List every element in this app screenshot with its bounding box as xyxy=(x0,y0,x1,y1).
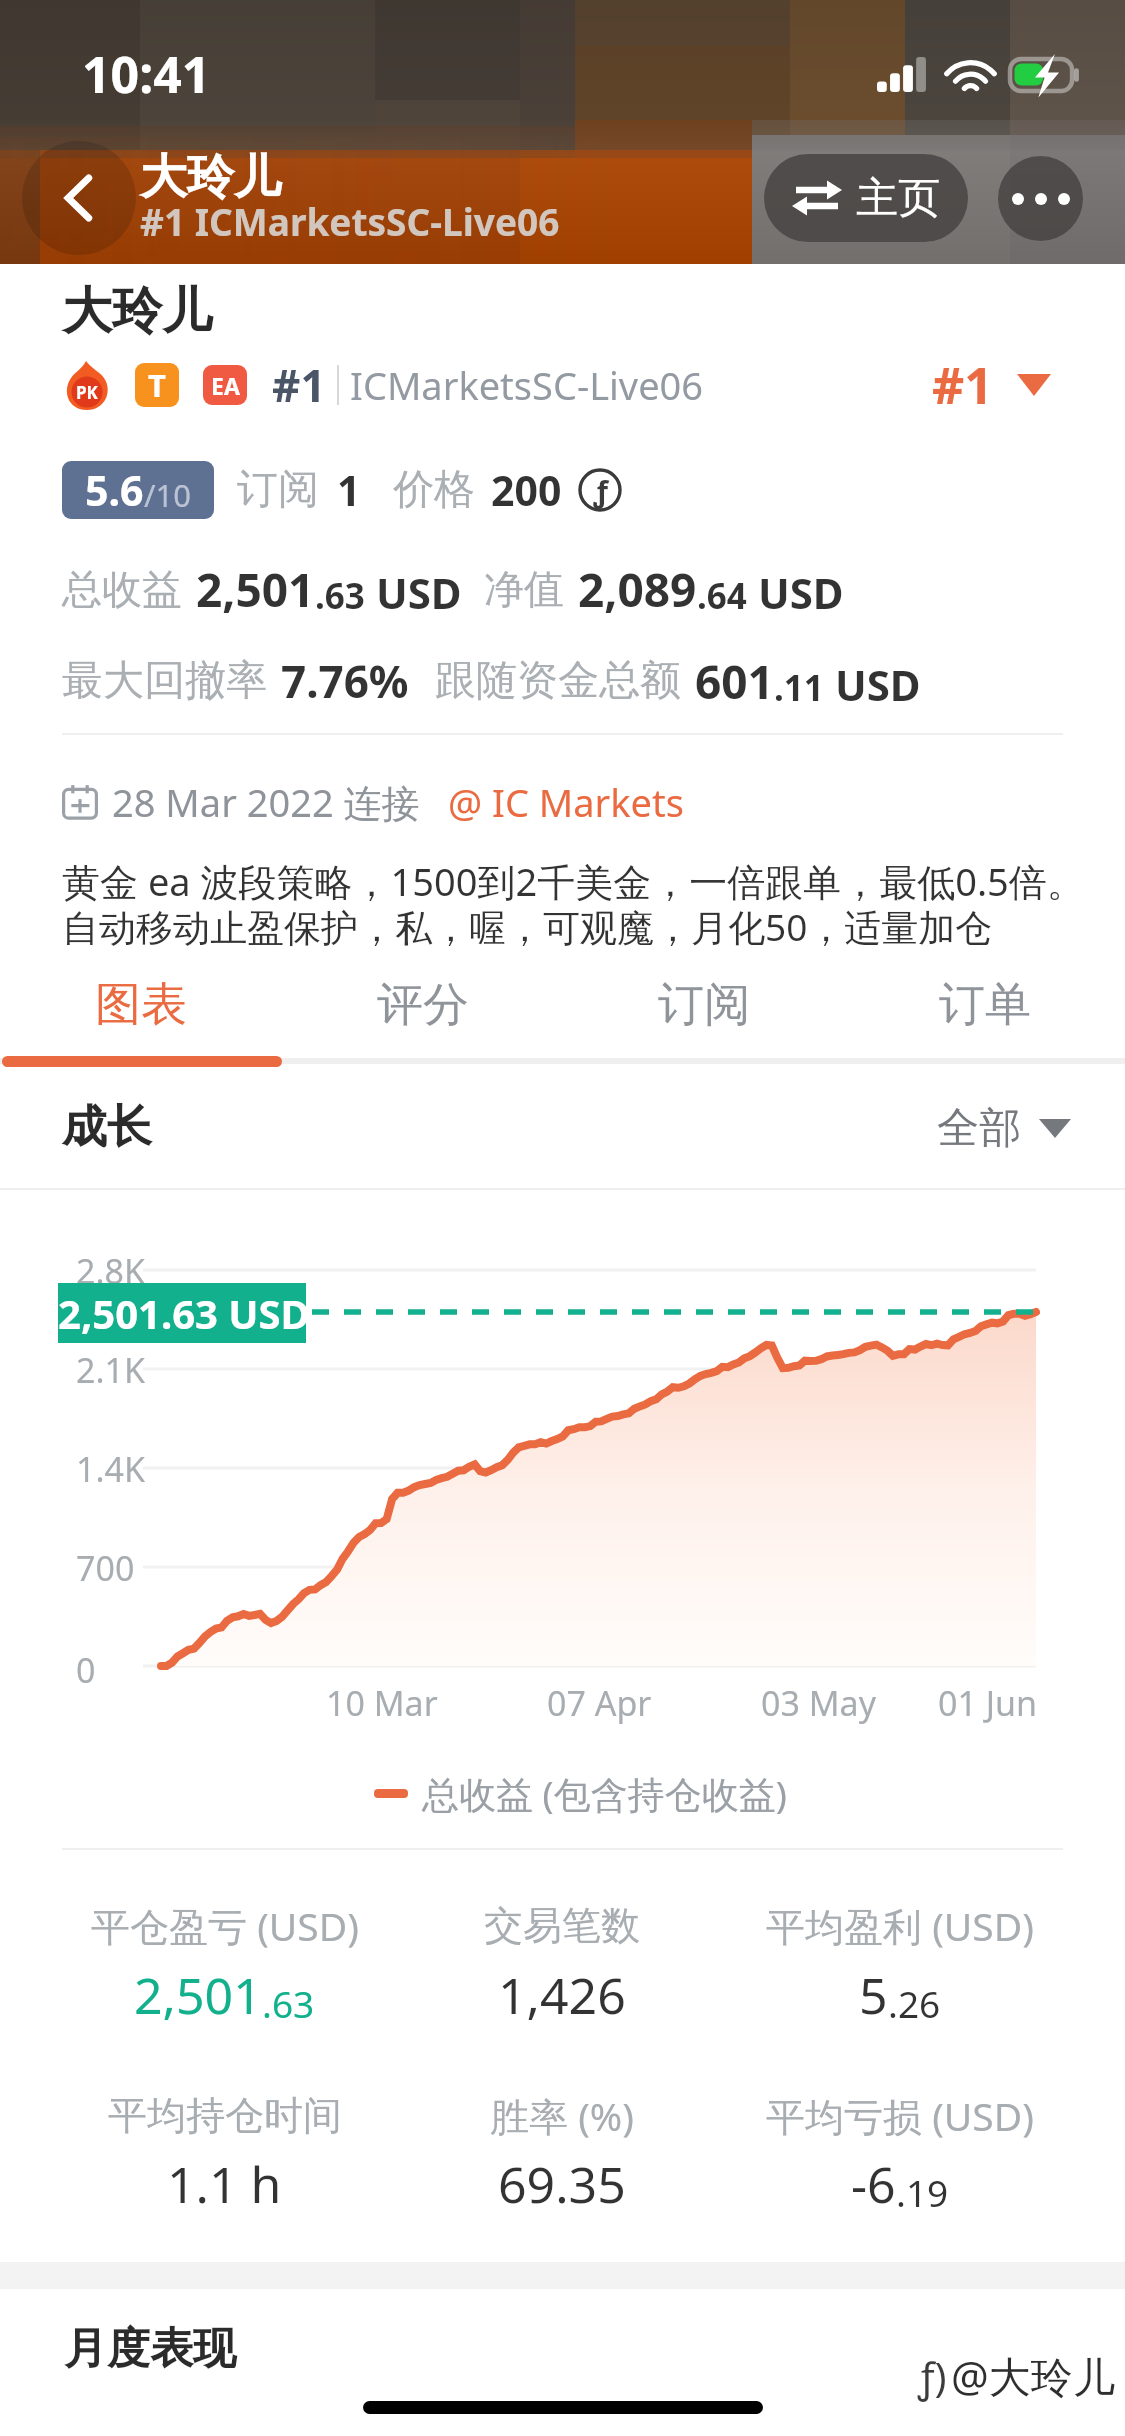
staticText: 69.35 xyxy=(498,2150,626,2218)
staticText: ƒ) xyxy=(918,2349,947,2403)
staticText: 订阅 xyxy=(237,464,319,516)
staticText: T xyxy=(148,364,166,406)
staticText: 200 xyxy=(491,462,562,518)
staticText: 月度表现 xyxy=(64,2322,236,2376)
button[interactable]: #1 xyxy=(932,351,1051,419)
staticText: 2.8K xyxy=(76,1248,146,1294)
staticText: -6 xyxy=(851,2150,896,2218)
staticText: 净值 xyxy=(484,564,564,614)
button[interactable]: 平均亏损 (USD) xyxy=(731,2075,1069,2155)
staticText: 1.1 h xyxy=(167,2150,282,2218)
staticText: ICMarketsSC-Live06 xyxy=(350,359,704,411)
staticText: .64 xyxy=(697,572,747,620)
button[interactable]: @ IC Markets xyxy=(448,776,684,828)
staticText: 1,426 xyxy=(498,1961,626,2029)
staticText: .63 xyxy=(262,1978,315,2028)
staticText: 评分 xyxy=(377,976,469,1034)
staticText: 总收益 xyxy=(62,564,182,614)
staticText: #1 ICMarketsSC-Live06 xyxy=(140,196,560,246)
staticText: 平均盈利 (USD) xyxy=(766,1899,1034,1952)
staticText: 5.6 xyxy=(85,462,144,518)
button[interactable]: 订单 xyxy=(844,955,1125,1055)
staticText: /10 xyxy=(144,474,191,516)
button[interactable]: 交易笔数 xyxy=(393,1885,731,1965)
staticText: 总收益 (包含持仓收益) xyxy=(422,1768,787,1819)
staticText: 平仓盈亏 (USD) xyxy=(91,1899,359,1952)
staticText: 大玲儿 xyxy=(140,148,281,207)
staticText: 平均亏损 (USD) xyxy=(766,2089,1034,2142)
staticText: #1 xyxy=(272,355,326,415)
staticText: 2,501.63 USD xyxy=(58,1286,306,1340)
staticText: .11 xyxy=(774,664,824,712)
staticText: 全部 xyxy=(937,1102,1021,1155)
staticText: 5 xyxy=(859,1961,888,2029)
staticText: USD xyxy=(824,656,921,713)
staticText: PK xyxy=(76,381,98,404)
staticText: 跟随资金总额 xyxy=(435,655,681,707)
button[interactable]: 平均盈利 (USD) xyxy=(731,1885,1069,1965)
staticText: 2,089 xyxy=(578,558,697,621)
staticText: 601 xyxy=(695,650,774,713)
staticText: 01 Jun xyxy=(938,1680,1038,1726)
staticText: 胜率 (%) xyxy=(490,2089,634,2142)
staticText: 自动移动止盈保护，私，喔，可观魔，月化50，适量加仓 xyxy=(62,901,993,952)
staticText: 平均持仓时间 xyxy=(108,2091,342,2140)
button[interactable]: 评分 xyxy=(282,955,563,1055)
staticText: 大玲儿 xyxy=(62,280,212,343)
button[interactable]: 平仓盈亏 (USD) xyxy=(56,1885,393,1965)
staticText: USD xyxy=(747,564,844,621)
staticText: 0 xyxy=(76,1647,96,1693)
staticText: 黄金 ea 波段策略，1500到2千美金，一倍跟单，最低0.5倍。 xyxy=(62,855,1085,907)
staticText: 7.76% xyxy=(281,651,409,711)
button[interactable]: 图表 xyxy=(0,955,282,1055)
button[interactable]: Back xyxy=(22,141,136,255)
staticText: ƒ xyxy=(593,471,608,510)
staticText: .19 xyxy=(896,2167,949,2217)
staticText: 03 May xyxy=(761,1680,876,1726)
staticText: 1 xyxy=(337,462,361,518)
staticText: USD xyxy=(365,564,462,621)
staticText: 图表 xyxy=(95,976,187,1034)
staticText: 2,501 xyxy=(196,558,315,621)
staticText: .63 xyxy=(315,572,365,620)
staticText: .26 xyxy=(888,1978,941,2028)
staticText: 07 Apr xyxy=(547,1680,652,1726)
staticText: 700 xyxy=(76,1545,135,1591)
staticText: 交易笔数 xyxy=(484,1901,640,1950)
staticText: #1 xyxy=(932,351,993,419)
staticText: 成长 xyxy=(62,1099,152,1156)
staticText: EA xyxy=(211,370,240,401)
staticText: 10 Mar xyxy=(326,1680,438,1726)
staticText: 28 Mar 2022 连接 xyxy=(112,776,420,828)
staticText: 1.4K xyxy=(76,1446,146,1492)
button[interactable]: 胜率 (%) xyxy=(393,2075,731,2155)
staticText: 2,501 xyxy=(134,1961,262,2029)
button[interactable]: 全部 xyxy=(937,1102,1071,1155)
button[interactable]: 主页 xyxy=(764,154,968,242)
staticText: 2.1K xyxy=(76,1347,146,1393)
staticText: 订阅 xyxy=(658,976,750,1034)
staticText: 主页 xyxy=(856,172,940,225)
staticText: @ IC Markets xyxy=(448,776,684,828)
staticText: 最大回撤率 xyxy=(62,655,267,707)
button[interactable]: 平均持仓时间 xyxy=(56,2075,393,2155)
staticText: 10:41 xyxy=(82,40,211,108)
staticText: @大玲儿 xyxy=(951,2347,1115,2404)
button[interactable]: More options xyxy=(998,156,1083,241)
staticText: 价格 xyxy=(393,464,475,516)
button[interactable]: 订阅 xyxy=(563,955,844,1055)
staticText: 订单 xyxy=(939,976,1031,1034)
